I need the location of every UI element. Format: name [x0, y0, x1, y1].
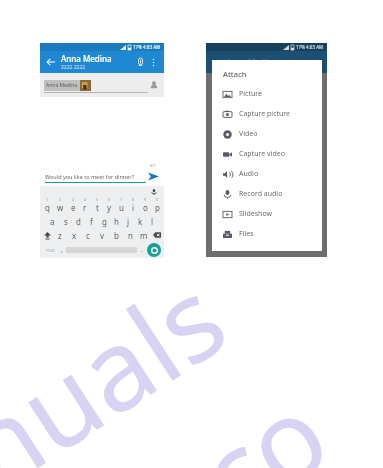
button[interactable]: Backspace [151, 229, 162, 241]
button[interactable]: Files [212, 224, 322, 244]
staticText: 8 [132, 197, 135, 202]
staticText: Picture [239, 89, 262, 99]
staticText: , [61, 245, 63, 255]
button[interactable]: Voice input [149, 187, 159, 197]
staticText: c [86, 230, 90, 241]
staticText: Audio [239, 169, 259, 179]
staticText: u [119, 202, 124, 213]
staticText: t [96, 202, 99, 213]
staticText: Record audio [239, 189, 283, 199]
button[interactable]: Slideshow [212, 204, 322, 224]
button[interactable]: ?123 [43, 248, 57, 253]
staticText: d [76, 216, 81, 227]
staticText: anualshive.co [0, 220, 365, 468]
staticText: 5 [96, 197, 99, 202]
staticText: Video [239, 129, 258, 139]
button[interactable]: Attach [133, 55, 147, 69]
button[interactable]: Anna Medina [40, 73, 164, 97]
button[interactable]: l [146, 216, 158, 227]
button[interactable]: v [95, 230, 109, 241]
button[interactable]: 6 [103, 197, 115, 213]
button[interactable]: Attach [212, 60, 322, 251]
staticText: o [143, 202, 148, 213]
button[interactable]: j [122, 216, 134, 227]
staticText: r [83, 202, 87, 213]
staticText: 6 [108, 197, 111, 202]
staticText: Anna Medina [46, 82, 78, 89]
button[interactable]: Record audio [212, 184, 322, 204]
button[interactable]: a [46, 216, 59, 227]
button[interactable]: 8 [127, 197, 139, 213]
button[interactable]: 0 [151, 197, 163, 213]
button[interactable]: g [98, 216, 110, 227]
staticText: 17% 4:03 AM [133, 44, 161, 50]
button[interactable]: Picture [212, 84, 322, 104]
button[interactable]: z [53, 230, 67, 241]
button[interactable]: More options [147, 56, 160, 69]
button[interactable]: 9 [139, 197, 151, 213]
staticText: z [58, 230, 62, 241]
button[interactable]: h [110, 216, 122, 227]
button[interactable]: Audio [212, 164, 322, 184]
button[interactable]: x [67, 230, 81, 241]
staticText: Files [239, 229, 254, 239]
staticText: y [107, 202, 112, 213]
staticText: Attach [223, 69, 247, 79]
staticText: a [50, 216, 55, 227]
button[interactable]: d [72, 216, 85, 227]
button[interactable]: 7 [115, 197, 127, 213]
staticText: b [114, 230, 119, 241]
button[interactable]: Would you like to meet for dinner? [45, 173, 135, 180]
staticText: Capture video [239, 149, 285, 159]
staticText: 9 [144, 197, 147, 202]
button[interactable]: b [109, 230, 123, 241]
button[interactable]: , [57, 245, 66, 255]
button[interactable]: 5 [91, 197, 103, 213]
staticText: g [102, 216, 107, 227]
button[interactable]: Back [44, 55, 58, 69]
staticText: 3 [72, 197, 75, 202]
button[interactable]: 3 [67, 197, 79, 213]
button[interactable]: m [137, 230, 151, 241]
button[interactable]: s [59, 216, 72, 227]
staticText: k [138, 216, 143, 227]
staticText: 2222 2222 [61, 64, 86, 71]
button[interactable]: n [123, 230, 137, 241]
staticText: n [128, 230, 133, 241]
staticText: f [90, 216, 93, 227]
button[interactable]: Add recipient [148, 79, 160, 91]
button[interactable]: Capture video [212, 144, 322, 164]
staticText: h [114, 216, 119, 227]
staticText: w [57, 202, 64, 213]
staticText: . [141, 245, 143, 255]
staticText: 1 [46, 197, 49, 202]
staticText: 0 [156, 197, 159, 202]
button[interactable]: f [85, 216, 98, 227]
button[interactable]: c [81, 230, 95, 241]
button[interactable]: 2 [54, 197, 67, 213]
button[interactable]: 1 [41, 197, 54, 213]
staticText: 7 [120, 197, 123, 202]
button[interactable]: Send [146, 169, 160, 183]
button[interactable]: Capture picture [212, 104, 322, 124]
button[interactable]: . [137, 245, 147, 255]
staticText: Slideshow [239, 209, 272, 219]
button[interactable]: Enter [147, 243, 161, 257]
staticText: 4 [84, 197, 87, 202]
staticText: s [64, 216, 68, 227]
staticText: 17% 4:03 AM [296, 44, 324, 50]
staticText: x [72, 230, 77, 241]
staticText: Anna Medina [61, 53, 112, 64]
staticText: q [45, 202, 50, 213]
staticText: e [71, 202, 76, 213]
staticText: 0/1 [150, 163, 157, 168]
button[interactable]: Shift [42, 229, 53, 241]
button[interactable]: 4 [79, 197, 91, 213]
staticText: m [140, 230, 148, 241]
button[interactable]: Video [212, 124, 322, 144]
staticText: Capture picture [239, 109, 291, 119]
staticText: v [100, 230, 105, 241]
button[interactable]: k [134, 216, 146, 227]
staticText: j [127, 216, 130, 227]
